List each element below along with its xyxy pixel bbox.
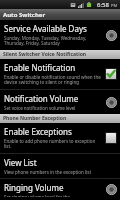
staticText: 6:58: [97, 1, 109, 9]
other: Open dialog: [106, 97, 117, 108]
staticText: View List: [4, 157, 37, 168]
staticText: Sunday, Monday, Tuesday, Wednesday, Thur…: [4, 35, 103, 47]
staticText: Phone Number Exception: [3, 115, 67, 122]
button[interactable]: Ringing Volume: [0, 179, 120, 200]
staticText: PM: [111, 3, 118, 8]
staticText: Enable Exceptions: [4, 126, 72, 137]
other: Open dialog: [106, 184, 117, 195]
staticText: Silent Switcher Voice Notification: [3, 51, 87, 58]
staticText: Enable to add phone numbers to exception…: [4, 138, 102, 150]
button[interactable]: View List: [0, 154, 120, 178]
staticText: Set voice notification volume level: [4, 105, 76, 111]
staticText: Service Available Days: [4, 23, 87, 34]
staticText: Enable or disable notification sound whe…: [4, 74, 102, 86]
other: Open dialog: [106, 30, 117, 41]
staticText: Auto Switcher: [3, 11, 46, 19]
button[interactable]: Enable Notification: [0, 59, 120, 89]
staticText: Enable Notification: [4, 62, 76, 73]
staticText: Ringing Volume: [4, 182, 64, 193]
button[interactable]: Service Available Days: [0, 20, 120, 50]
staticText: View phone numbers in the exception list: [4, 169, 92, 175]
staticText: Notification Volume: [4, 93, 79, 104]
button[interactable]: Enable Exceptions: [0, 123, 120, 153]
staticText: Set ringing volume level for the: [4, 194, 71, 197]
button[interactable]: Notification Volume: [0, 90, 120, 114]
